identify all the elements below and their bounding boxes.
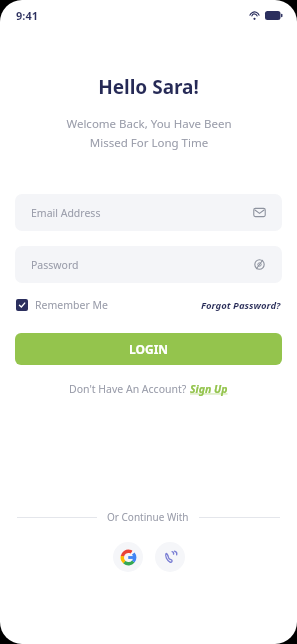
button[interactable]: Continue with Google	[113, 542, 143, 572]
staticText: Welcome Back, You Have Been Missed For L…	[66, 116, 232, 150]
staticText: Remember Me	[35, 298, 108, 312]
staticText: Sign Up	[190, 382, 228, 396]
button[interactable]: Sign Up	[190, 382, 228, 396]
button[interactable]: Forgot Password?	[201, 295, 281, 316]
staticText: Or Continue With	[107, 510, 189, 524]
staticText: LOGIN	[129, 341, 169, 357]
staticText: Password	[31, 258, 79, 272]
staticText: 9:41	[16, 8, 38, 23]
button[interactable]: Continue with phone number	[155, 542, 185, 572]
button[interactable]: Email Address	[15, 194, 282, 231]
button[interactable]: LOGIN	[15, 333, 282, 365]
staticText: Forgot Password?	[201, 299, 281, 312]
button[interactable]: Password	[15, 246, 282, 283]
staticText: Hello Sara!	[98, 74, 199, 100]
staticText: Don't Have An Account?	[69, 382, 190, 396]
staticText: Email Address	[31, 206, 101, 220]
button[interactable]: Remember Me	[16, 294, 108, 316]
